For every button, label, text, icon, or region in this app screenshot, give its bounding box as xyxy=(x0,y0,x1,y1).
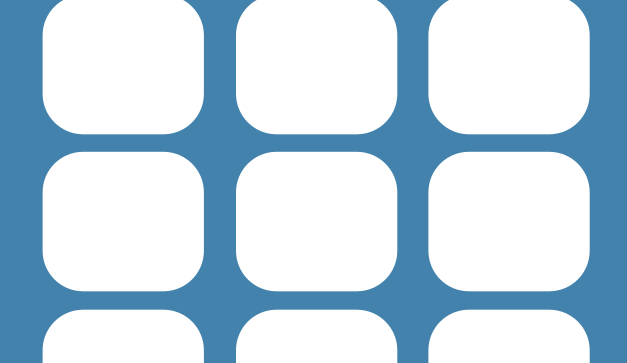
button[interactable]: Item 1-3 xyxy=(428,0,590,134)
button[interactable]: Item 3-3 xyxy=(428,310,590,363)
button[interactable]: Item 3-1 xyxy=(43,310,204,363)
button[interactable]: Item 3-2 xyxy=(236,310,397,363)
button[interactable]: Item 1-2 xyxy=(236,0,397,134)
button[interactable]: Item 2-2 xyxy=(236,152,397,291)
button[interactable]: Item 2-3 xyxy=(428,152,590,291)
button[interactable]: Item 2-1 xyxy=(43,152,204,291)
button[interactable]: Item 1-1 xyxy=(43,0,204,134)
